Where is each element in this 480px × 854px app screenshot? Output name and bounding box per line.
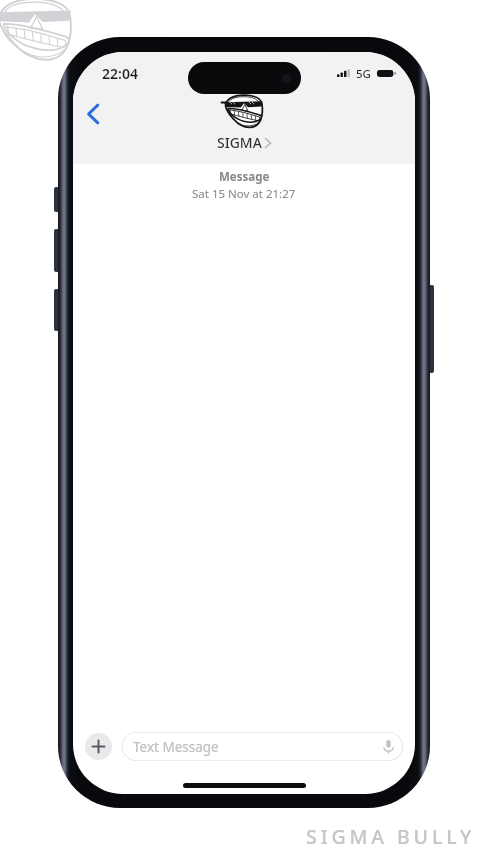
button[interactable]: Back bbox=[76, 96, 110, 132]
staticText: 5G bbox=[356, 66, 371, 80]
button[interactable]: Add attachment bbox=[85, 733, 112, 760]
staticText: Sat 15 Nov at 21:27 bbox=[192, 186, 296, 202]
button[interactable]: SIGMA bbox=[217, 94, 271, 152]
staticText: SIGMA bbox=[217, 133, 262, 152]
staticText: SIGMA BULLY bbox=[306, 823, 476, 850]
staticText: 22:04 bbox=[102, 64, 138, 83]
staticText: Message bbox=[219, 169, 270, 185]
staticText: Text Message bbox=[133, 738, 219, 756]
button[interactable]: Text Message bbox=[122, 732, 403, 761]
